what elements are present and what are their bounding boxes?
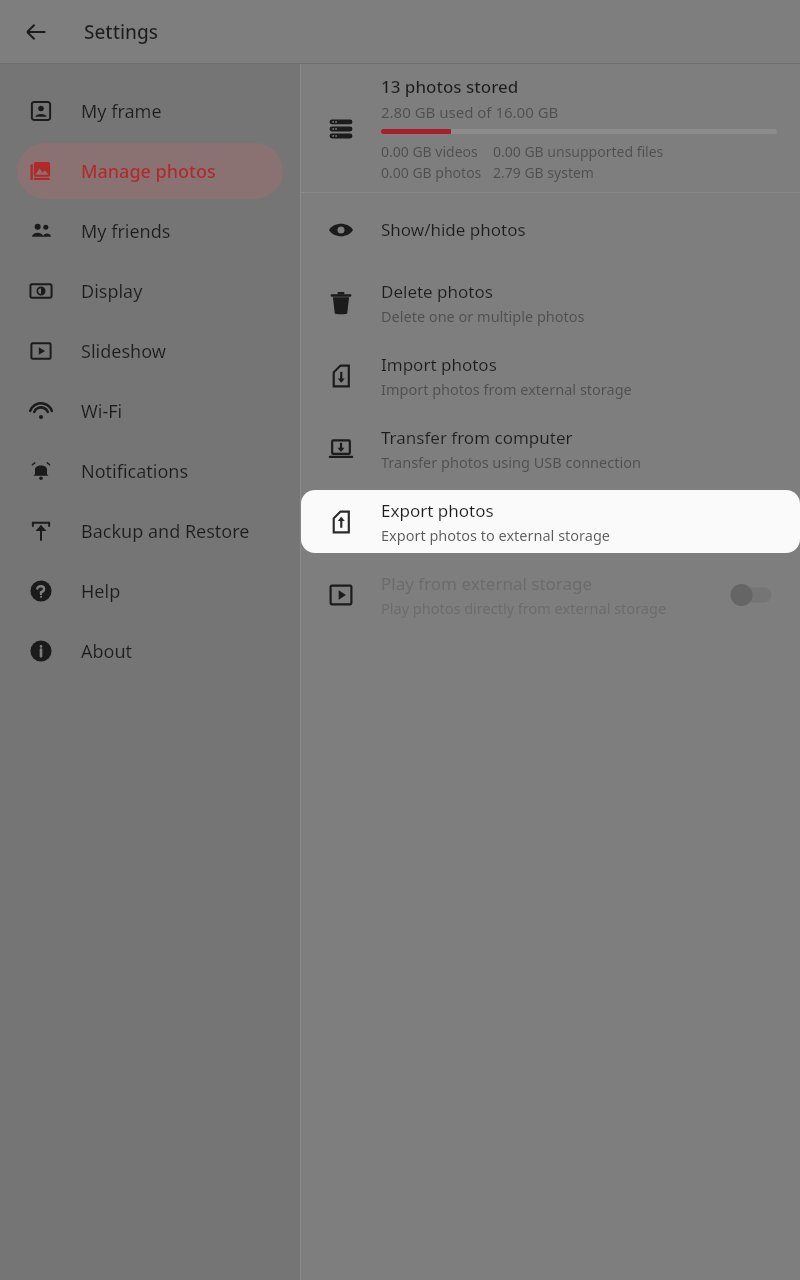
staticText: 13 photos stored [381, 75, 519, 98]
staticText: Import photos from external storage [381, 379, 632, 399]
staticText: Wi-Fi [81, 399, 123, 424]
staticText: Slideshow [81, 339, 166, 364]
button[interactable]: My friends [17, 203, 283, 259]
staticText: 2.79 GB system [493, 163, 594, 182]
staticText: Notifications [81, 459, 189, 484]
staticText: 2.80 GB used of 16.00 GB [381, 102, 559, 122]
button[interactable]: Import photos [301, 339, 800, 412]
staticText: About [81, 639, 133, 664]
button[interactable]: Display [17, 263, 283, 319]
button[interactable]: Wi-Fi [17, 383, 283, 439]
button[interactable]: Delete photos [301, 266, 800, 339]
staticText: Delete one or multiple photos [381, 306, 585, 326]
staticText: Settings [84, 19, 158, 45]
button[interactable]: Export photos [301, 490, 800, 553]
button[interactable]: My frame [17, 83, 283, 139]
staticText: My frame [81, 99, 162, 124]
staticText: Play photos directly from external stora… [381, 598, 667, 618]
staticText: Export photos to external storage [381, 525, 611, 545]
staticText: 0.00 GB photos [381, 163, 482, 182]
staticText: Help [81, 579, 121, 604]
button[interactable]: Backup and Restore [17, 503, 283, 559]
button[interactable]: Transfer from computer [301, 412, 800, 485]
staticText: Delete photos [381, 280, 493, 303]
staticText: Transfer from computer [381, 426, 573, 449]
staticText: Play from external storage [381, 572, 593, 595]
staticText: Import photos [381, 353, 497, 376]
button[interactable]: Notifications [17, 443, 283, 499]
button[interactable]: About [17, 623, 283, 679]
button[interactable]: Play from external storage toggle [716, 575, 788, 615]
button[interactable]: Help [17, 563, 283, 619]
staticText: Display [81, 279, 143, 304]
staticText: 0.00 GB videos [381, 142, 478, 161]
button[interactable]: Slideshow [17, 323, 283, 379]
button[interactable]: Show/hide photos [301, 193, 800, 266]
staticText: Manage photos [81, 159, 216, 184]
button[interactable]: Back [12, 8, 60, 56]
button[interactable]: Play from external storage [301, 558, 800, 631]
staticText: 0.00 GB unsupported files [493, 142, 664, 161]
staticText: My friends [81, 219, 171, 244]
staticText: Export photos [381, 499, 494, 522]
staticText: Show/hide photos [381, 218, 526, 241]
staticText: Backup and Restore [81, 519, 250, 544]
staticText: Transfer photos using USB connection [381, 452, 641, 472]
button[interactable]: Manage photos [17, 143, 283, 199]
button[interactable]: 13 photos stored [301, 64, 800, 192]
